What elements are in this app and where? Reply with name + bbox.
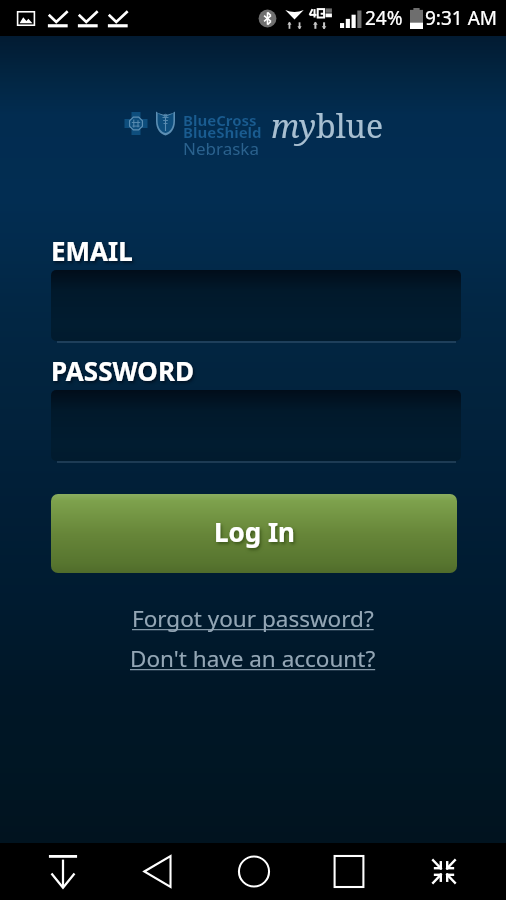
staticText: BlueShield — [183, 122, 262, 142]
button[interactable]: Recent apps — [301, 843, 396, 900]
staticText: 9:31 AM — [425, 5, 498, 31]
staticText: blue — [316, 104, 384, 148]
button[interactable]: Don't have an account? — [126, 642, 380, 675]
button[interactable] — [51, 390, 461, 461]
button[interactable]: Hide keyboard — [15, 843, 110, 900]
button[interactable]: Forgot your password? — [128, 602, 378, 635]
button[interactable]: Log In — [51, 494, 457, 573]
button[interactable]: Back — [111, 843, 206, 900]
staticText: Nebraska — [183, 137, 259, 160]
staticText: my — [271, 104, 316, 148]
button[interactable]: Home — [206, 843, 301, 900]
staticText: EMAIL — [51, 233, 133, 268]
staticText: Log In — [214, 514, 295, 549]
button[interactable] — [51, 270, 461, 341]
staticText: 24% — [365, 5, 403, 31]
staticText: Forgot your password? — [132, 603, 374, 634]
staticText: PASSWORD — [51, 353, 195, 388]
staticText: Don't have an account? — [130, 643, 376, 674]
staticText: BlueCross — [183, 110, 257, 130]
button[interactable]: Shrink screen — [396, 843, 491, 900]
